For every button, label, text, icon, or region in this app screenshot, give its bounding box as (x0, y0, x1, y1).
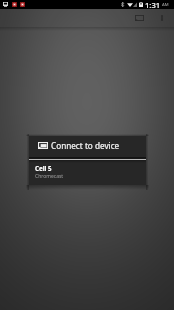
staticText: AM (162, 2, 169, 8)
button[interactable]: More options (155, 11, 169, 25)
button[interactable]: Cast to device (130, 9, 148, 27)
staticText: Chromecast (35, 173, 64, 180)
staticText: Cell 5 (35, 164, 52, 172)
staticText: 1:31 (145, 0, 161, 9)
button[interactable]: Cell 5 (29, 160, 146, 185)
staticText: Connect to device (51, 140, 120, 151)
